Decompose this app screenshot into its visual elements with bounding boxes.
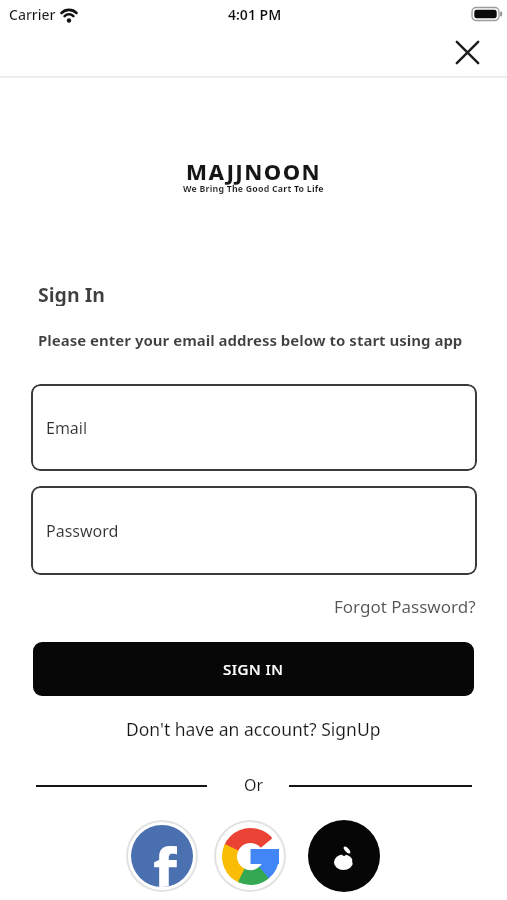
button[interactable] xyxy=(214,820,286,892)
staticText: Sign In xyxy=(38,281,105,306)
staticText: Password xyxy=(46,520,119,542)
button[interactable]: Email xyxy=(31,384,477,471)
staticText: SIGN IN xyxy=(223,659,284,679)
staticText: We Bring The Good Cart To Life xyxy=(183,183,324,195)
button[interactable]: Password xyxy=(31,486,477,575)
staticText: Don't have an account? SignUp xyxy=(126,717,381,741)
button[interactable]: f xyxy=(126,820,198,892)
staticText: Or xyxy=(244,774,264,796)
staticText: Please enter your email address below to… xyxy=(38,330,463,350)
button[interactable] xyxy=(308,820,380,892)
button[interactable]: Don't have an account? SignUp xyxy=(126,717,381,741)
staticText: f xyxy=(153,828,177,887)
staticText: 4:01 PM xyxy=(228,5,282,24)
button[interactable]: Forgot Password? xyxy=(334,595,476,617)
button[interactable] xyxy=(448,34,486,70)
staticText: Email xyxy=(46,417,88,439)
staticText: Carrier xyxy=(9,5,56,24)
button[interactable]: SIGN IN xyxy=(33,642,474,696)
staticText: Forgot Password? xyxy=(334,595,476,617)
staticText: MAJJNOON xyxy=(186,156,322,186)
